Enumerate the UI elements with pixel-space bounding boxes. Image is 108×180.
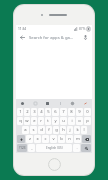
button[interactable]: h [60,126,66,134]
staticText: r [40,118,42,124]
button[interactable]: , [28,144,35,152]
staticText: , [31,145,33,151]
staticText: x [36,136,39,142]
button[interactable]: Text edit [57,100,64,107]
staticText: 3 [33,109,36,115]
staticText: y [54,118,57,124]
button[interactable]: v [50,135,57,143]
staticText: d [40,127,43,133]
button[interactable]: Search [81,144,91,152]
staticText: m [76,136,80,142]
staticText: c [44,136,47,142]
button[interactable]: 0 [84,108,91,116]
staticText: 11:34 [18,27,27,31]
button[interactable]: 3 [31,108,37,116]
button[interactable]: n [66,135,73,143]
button[interactable]: x [34,135,41,143]
button[interactable]: t [45,117,51,125]
staticText: n [68,136,71,142]
button[interactable]: 8 [68,108,75,116]
button[interactable]: a [22,126,29,134]
button[interactable]: English (US) [36,144,72,152]
button[interactable]: c [42,135,49,143]
staticText: 5 [47,109,50,115]
staticText: z [29,136,31,142]
button[interactable]: 7 [60,108,67,116]
staticText: e [33,118,36,124]
button[interactable]: k [74,126,80,134]
button[interactable]: Sticker [32,100,39,107]
button[interactable]: Home [48,158,61,171]
staticText: q [19,118,22,124]
staticText: Search for apps & ga... [29,35,74,41]
button[interactable]: Back [19,34,26,41]
button[interactable]: r [38,117,44,125]
staticText: l [83,127,85,133]
button[interactable]: i [68,117,75,125]
staticText: 9 [78,109,81,115]
staticText: p [86,118,89,124]
button[interactable]: y [52,117,59,125]
staticText: 8 [70,109,73,115]
button[interactable]: d [38,126,45,134]
staticText: 87% [79,27,86,31]
staticText: 7 [62,109,65,115]
staticText: u [62,118,65,124]
button[interactable]: 2 [24,108,30,116]
staticText: f [48,127,50,133]
staticText: 6 [54,109,57,115]
button[interactable]: m [74,135,81,143]
button[interactable]: 4 [38,108,44,116]
button[interactable]: g [53,126,59,134]
button[interactable]: Expand [82,100,89,107]
button[interactable]: Backspace [82,135,91,143]
button[interactable]: Shift [17,135,25,143]
staticText: v [52,136,55,142]
button[interactable]: Voice search [82,34,89,41]
staticText: i [71,118,73,124]
button[interactable]: f [46,126,52,134]
button[interactable]: j [67,126,73,134]
button[interactable]: b [58,135,65,143]
staticText: g [55,127,58,133]
staticText: a [24,127,27,133]
staticText: o [78,118,81,124]
button[interactable]: Emoji [19,100,26,107]
staticText: . [76,145,78,151]
button[interactable]: 1 [17,108,23,116]
button[interactable]: q [17,117,23,125]
button[interactable]: Clipboard [44,100,51,107]
button[interactable]: u [60,117,67,125]
staticText: s [32,127,35,133]
button[interactable]: w [24,117,30,125]
button[interactable]: ?123 [17,144,27,152]
button[interactable]: s [30,126,37,134]
staticText: 1 [19,109,22,115]
button[interactable]: z [26,135,33,143]
button[interactable]: p [84,117,91,125]
button[interactable]: l [81,126,87,134]
staticText: English (US) [46,146,63,150]
staticText: b [60,136,63,142]
button[interactable]: 6 [52,108,59,116]
staticText: t [47,118,49,124]
button[interactable]: . [73,144,80,152]
button[interactable]: o [76,117,83,125]
button[interactable]: 9 [76,108,83,116]
staticText: w [25,118,29,124]
button[interactable]: e [31,117,37,125]
staticText: j [69,127,71,133]
button[interactable]: 5 [45,108,51,116]
staticText: 0 [86,109,89,115]
staticText: 4 [40,109,43,115]
button[interactable]: Back [16,32,92,43]
button[interactable]: Settings [69,100,76,107]
staticText: k [76,127,79,133]
staticText: 2 [26,109,29,115]
staticText: ?123 [19,146,26,150]
staticText: h [62,127,65,133]
